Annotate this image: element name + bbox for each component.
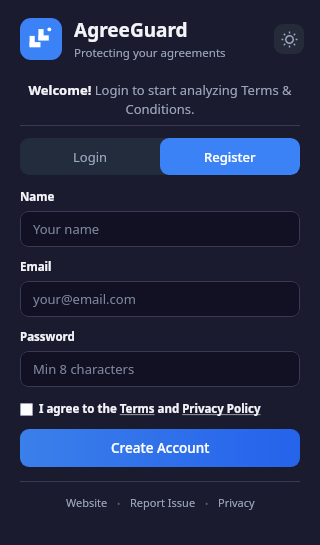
staticText: Website bbox=[66, 495, 108, 510]
button[interactable]: Your name bbox=[20, 211, 300, 247]
button[interactable]: Report Issue bbox=[126, 493, 200, 512]
staticText: Report Issue bbox=[130, 495, 196, 510]
staticText: your@email.com bbox=[33, 290, 136, 308]
staticText: Password bbox=[20, 329, 75, 345]
staticText: • bbox=[205, 497, 209, 509]
staticText: Privacy bbox=[218, 495, 255, 510]
staticText: Protecting your agreements bbox=[74, 45, 226, 61]
staticText: Min 8 characters bbox=[33, 360, 135, 378]
staticText: AgreeGuard bbox=[74, 17, 188, 43]
staticText: Login bbox=[73, 148, 108, 166]
staticText: Name bbox=[20, 189, 55, 205]
button[interactable]: Toggle theme bbox=[274, 24, 304, 54]
staticText: Welcome! Login to start analyzing Terms … bbox=[24, 81, 296, 118]
button[interactable]: Login bbox=[20, 138, 160, 175]
staticText: • bbox=[117, 497, 121, 509]
staticText: Your name bbox=[33, 220, 100, 238]
staticText: I agree to the Terms and Privacy Policy bbox=[39, 401, 261, 417]
staticText: Email bbox=[20, 259, 52, 275]
button[interactable]: Privacy bbox=[214, 493, 259, 512]
button[interactable]: Min 8 characters bbox=[20, 351, 300, 387]
button[interactable]: your@email.com bbox=[20, 281, 300, 317]
button[interactable]: Create Account bbox=[20, 429, 300, 467]
button[interactable]: I agree to the Terms and Privacy Policy bbox=[20, 401, 300, 417]
staticText: Create Account bbox=[111, 439, 210, 457]
staticText: Register bbox=[204, 148, 256, 166]
button[interactable]: Website bbox=[62, 493, 112, 512]
button[interactable]: Register bbox=[160, 138, 300, 175]
